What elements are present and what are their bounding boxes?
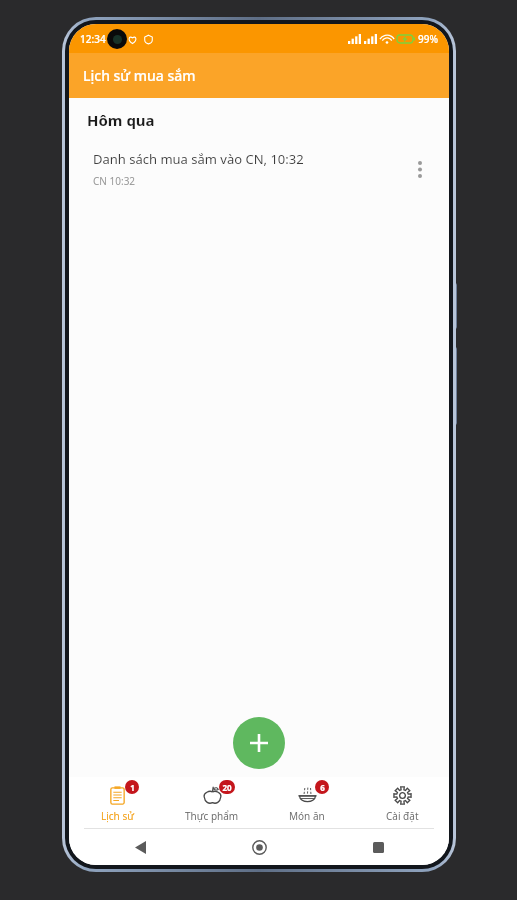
staticText: 12:34 — [80, 32, 106, 46]
staticText: Cài đặt — [386, 809, 419, 823]
button[interactable]: 1 — [78, 777, 156, 829]
staticText: 1 — [130, 782, 135, 793]
staticText: Lịch sử mua sắm — [83, 66, 196, 85]
staticText: 99% — [418, 32, 438, 46]
button[interactable]: Danh sách mua sắm vào CN, 10:32 — [69, 144, 449, 196]
staticText: CN 10:32 — [93, 174, 136, 188]
button[interactable]: Recents — [363, 832, 393, 862]
staticText: Danh sách mua sắm vào CN, 10:32 — [93, 150, 304, 168]
staticText: Hôm qua — [87, 110, 155, 130]
button[interactable]: 6 — [268, 777, 346, 829]
staticText: Lịch sử — [101, 809, 134, 823]
staticText: 20 — [222, 782, 232, 793]
staticText: Món ăn — [289, 809, 325, 823]
button[interactable]: Thêm — [233, 717, 285, 769]
button[interactable]: Tùy chọn khác — [403, 152, 437, 186]
button[interactable]: Cài đặt — [363, 777, 441, 829]
staticText: 6 — [320, 782, 325, 793]
button[interactable]: Home — [244, 832, 274, 862]
button[interactable]: 20 — [173, 777, 251, 829]
staticText: Thực phẩm — [185, 809, 239, 823]
button[interactable]: Back — [125, 832, 155, 862]
